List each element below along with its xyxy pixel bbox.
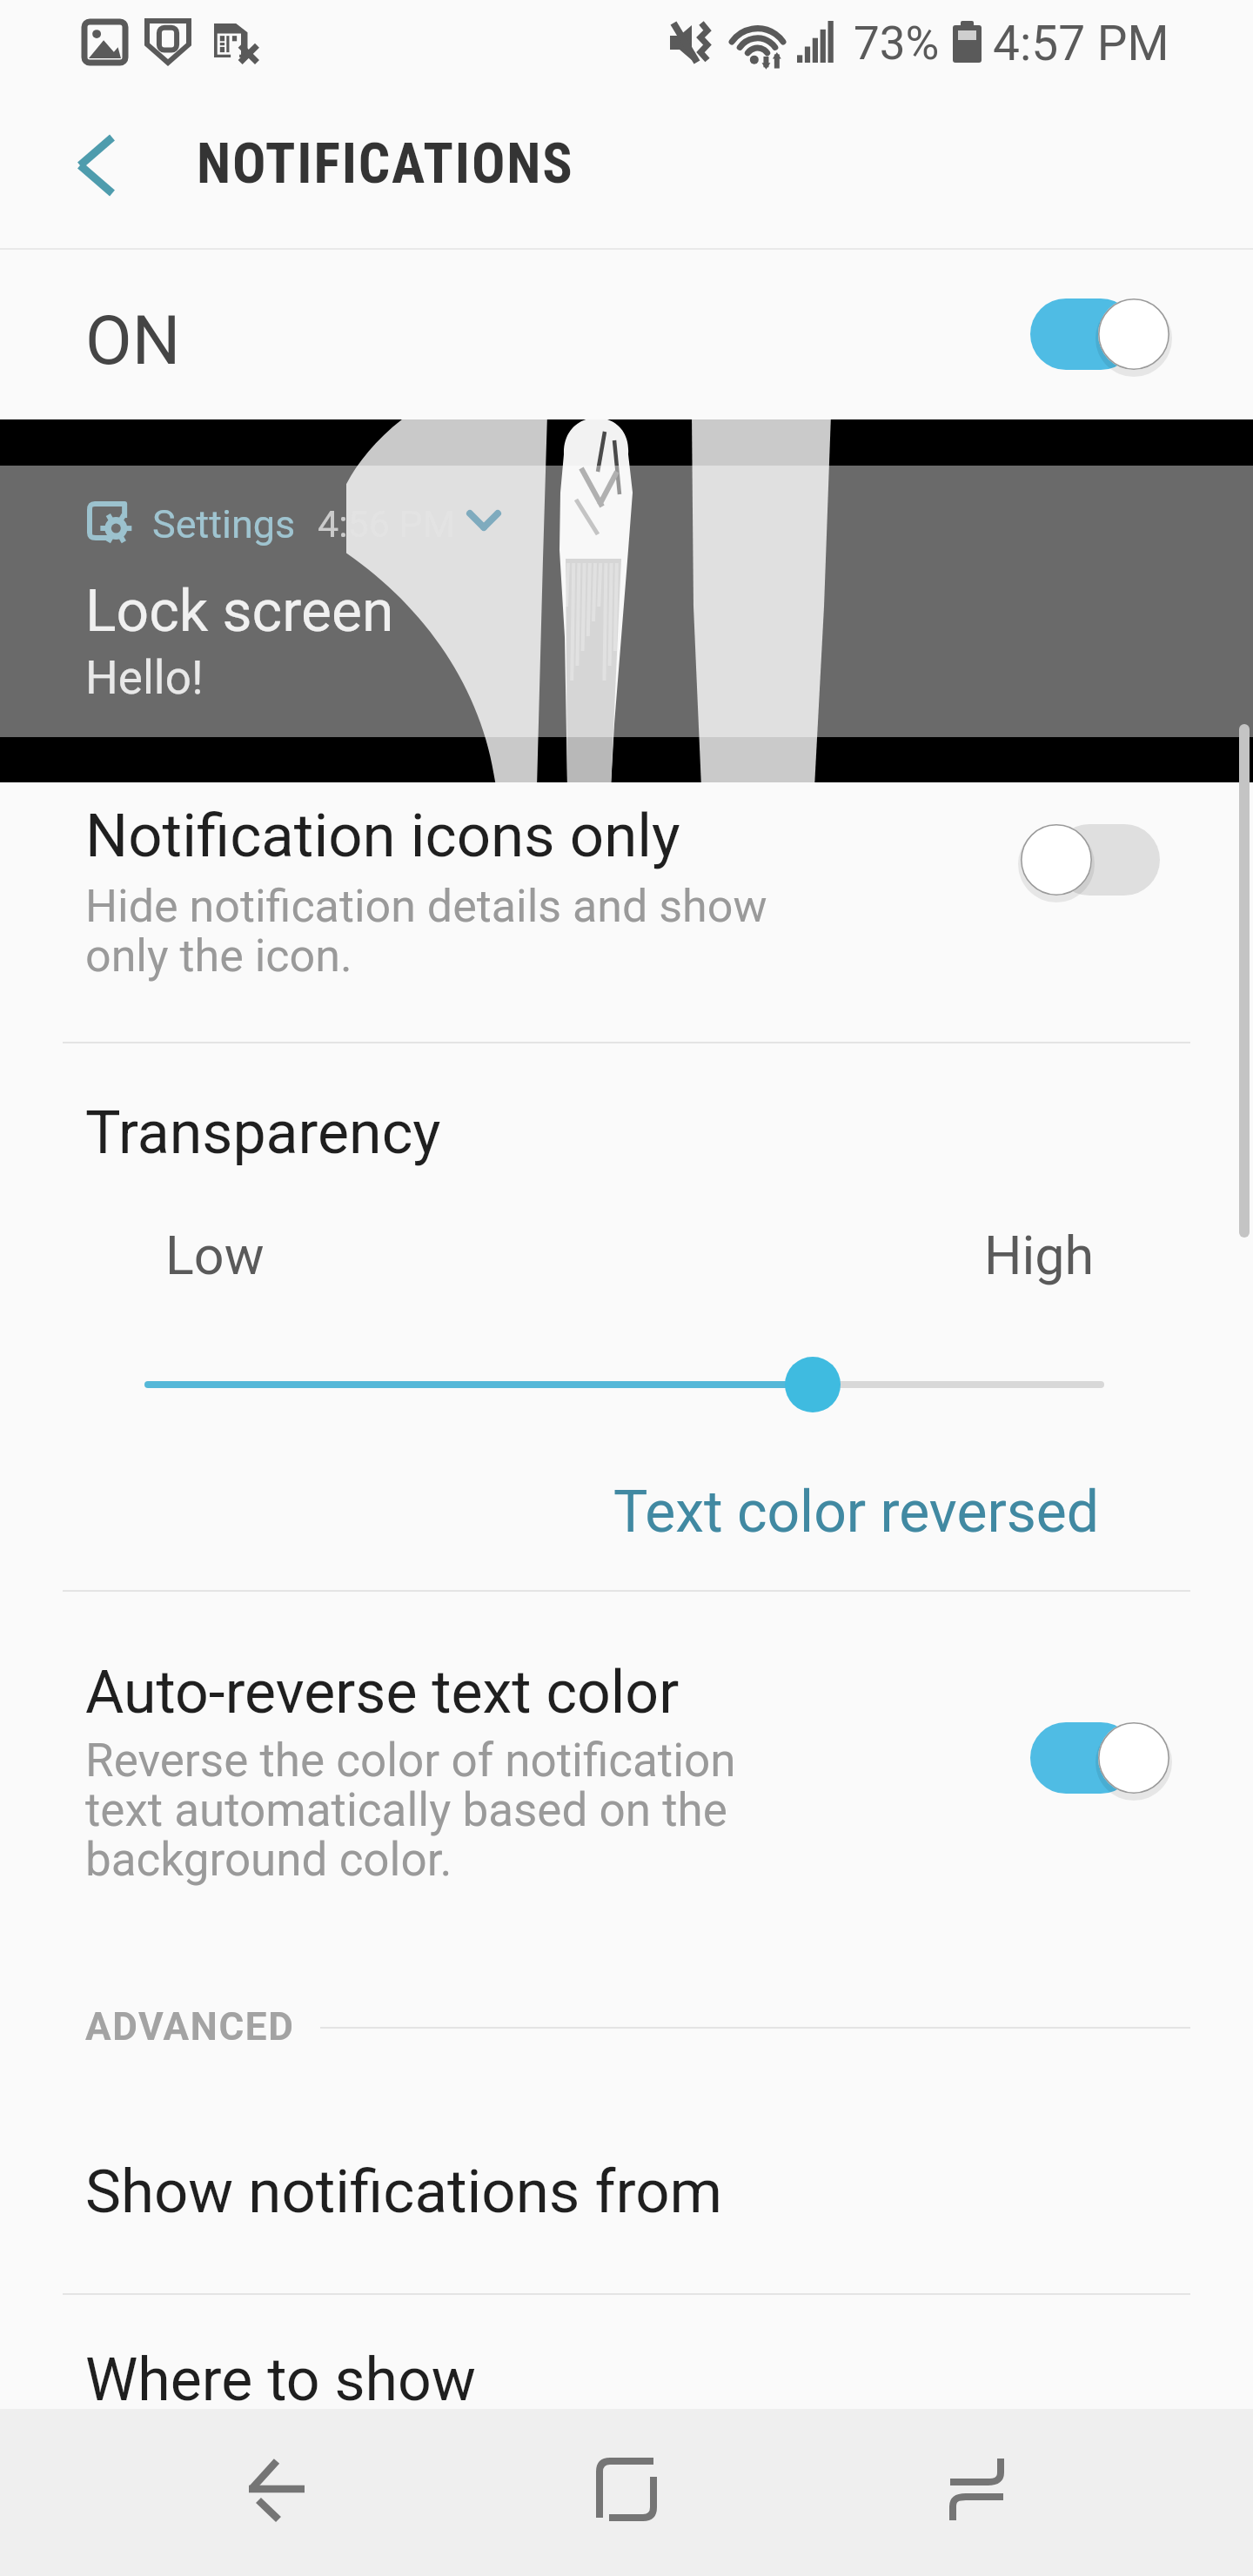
staticText: ADVANCED <box>85 2004 295 2049</box>
staticText: 4:56 PM <box>318 502 456 546</box>
staticText: Show notifications from <box>85 2157 723 2227</box>
staticText: Where to show <box>85 2345 476 2415</box>
staticText: 73% <box>854 17 940 70</box>
staticText: Low <box>165 1224 265 1286</box>
button[interactable]: Back <box>169 2409 378 2576</box>
button[interactable]: Recent apps <box>879 2409 1088 2576</box>
staticText: Settings <box>152 501 296 547</box>
staticText: Hello! <box>85 651 204 705</box>
button[interactable]: Show notifications from <box>0 2089 1253 2293</box>
staticText: Reverse the color of notification text a… <box>85 1734 747 1887</box>
button[interactable] <box>1030 1718 1169 1798</box>
staticText: ON <box>85 301 181 380</box>
button[interactable]: Home <box>522 2409 731 2576</box>
staticText: High <box>984 1224 1095 1286</box>
button[interactable] <box>122 1341 1131 1428</box>
staticText: NOTIFICATIONS <box>197 131 574 197</box>
button[interactable]: Navigate up <box>44 115 141 212</box>
button[interactable]: Where to show <box>0 2295 1253 2409</box>
staticText: Hide notification details and show only … <box>85 880 799 983</box>
button[interactable] <box>1030 294 1169 374</box>
staticText: 4:57 PM <box>993 16 1169 71</box>
staticText: Lock screen <box>85 578 394 645</box>
button[interactable]: Notification icons only <box>0 782 1253 1042</box>
button[interactable]: Auto-reverse text color <box>0 1592 1253 1940</box>
button[interactable]: Text color reversed <box>613 1479 1100 1546</box>
staticText: Transparency <box>85 1098 441 1168</box>
staticText: Notification icons only <box>85 801 680 871</box>
button[interactable] <box>1021 820 1160 900</box>
button[interactable]: ON <box>0 250 1253 419</box>
staticText: Auto-reverse text color <box>85 1658 680 1727</box>
